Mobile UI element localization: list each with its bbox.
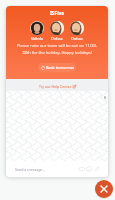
button[interactable]: Send a message... [6, 161, 108, 177]
staticText: Chelsea [71, 37, 83, 41]
staticText: Back tomorrow [46, 65, 74, 70]
staticText: Send a message... [15, 167, 46, 172]
button[interactable]: Insert GIF [79, 166, 85, 172]
button[interactable]: Attach file [93, 166, 99, 172]
staticText: Melinda [31, 37, 43, 41]
staticText: Try our Help Center [39, 84, 72, 89]
staticText: ISFive [50, 10, 65, 17]
button[interactable]: Insert emoji [86, 166, 92, 172]
button[interactable]: Back tomorrow [38, 63, 76, 72]
button[interactable]: Try our Help Center [6, 79, 108, 91]
staticText: Please note our team will be out on 11/2… [6, 43, 108, 55]
staticText: Chelsea [51, 37, 63, 41]
button[interactable]: Close messenger [95, 180, 113, 198]
